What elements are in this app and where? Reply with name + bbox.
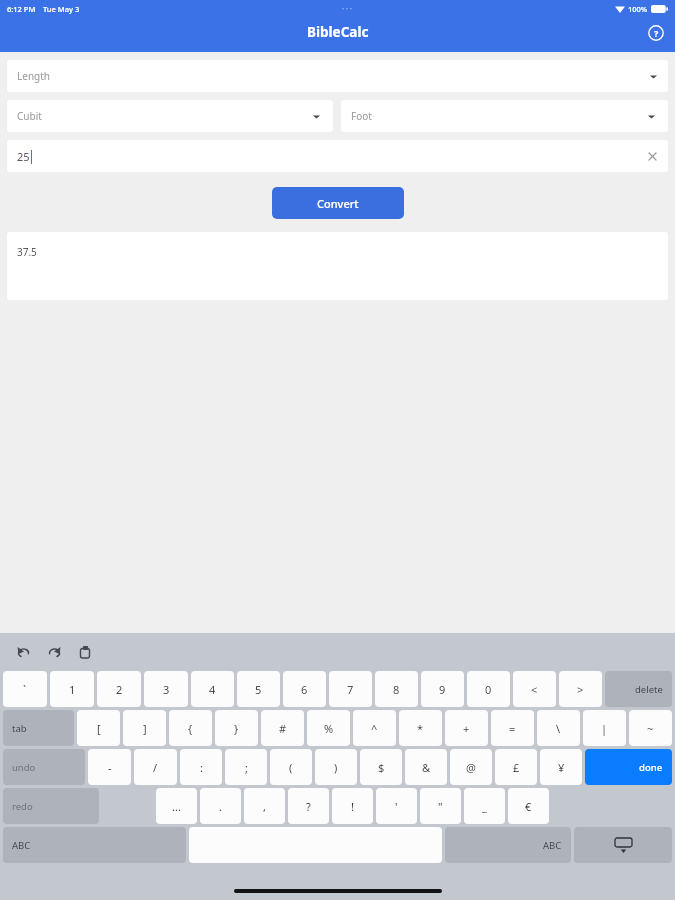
button[interactable]: _	[464, 788, 505, 824]
button[interactable]: delete	[605, 671, 672, 707]
button[interactable]: Undo	[13, 642, 33, 662]
staticText: <	[531, 682, 538, 697]
button[interactable]: Dismiss keyboard	[574, 827, 672, 863]
staticText: &	[422, 760, 431, 775]
staticText: 8	[393, 682, 400, 697]
button[interactable]: 37.5	[7, 232, 668, 300]
button[interactable]: }	[215, 710, 258, 746]
button[interactable]: *	[399, 710, 442, 746]
button[interactable]: ~	[629, 710, 672, 746]
staticText: (	[289, 760, 293, 775]
button[interactable]: <	[513, 671, 556, 707]
button[interactable]: 0	[467, 671, 510, 707]
button[interactable]: !	[332, 788, 373, 824]
button[interactable]: /	[134, 749, 177, 785]
button[interactable]: #	[261, 710, 304, 746]
button[interactable]: :	[180, 749, 222, 785]
button[interactable]: Cubit	[7, 100, 333, 132]
button[interactable]: 7	[329, 671, 372, 707]
button[interactable]: ...	[156, 788, 197, 824]
button[interactable]: 4	[191, 671, 234, 707]
button[interactable]: .	[200, 788, 241, 824]
button[interactable]: ABC	[445, 827, 571, 863]
staticText: 6:12 PM	[7, 4, 36, 14]
button[interactable]: +	[445, 710, 488, 746]
button[interactable]: \	[537, 710, 580, 746]
staticText: _	[482, 799, 487, 814]
staticText: ABC	[543, 839, 562, 852]
button[interactable]: €	[508, 788, 549, 824]
button[interactable]: =	[491, 710, 534, 746]
staticText: =	[509, 721, 516, 736]
staticText: 100%	[628, 4, 648, 14]
button[interactable]: -	[88, 749, 131, 785]
button[interactable]: '	[376, 788, 417, 824]
staticText: 0	[485, 682, 492, 697]
button[interactable]: Help	[644, 21, 668, 45]
button[interactable]: (	[270, 749, 312, 785]
staticText: 5	[255, 682, 262, 697]
button[interactable]: redo	[3, 788, 99, 824]
button[interactable]: ]	[123, 710, 166, 746]
button[interactable]: ?	[288, 788, 329, 824]
button[interactable]: >	[559, 671, 602, 707]
button[interactable]: 2	[97, 671, 141, 707]
staticText: @	[466, 760, 476, 775]
button[interactable]: Foot	[341, 100, 668, 132]
staticText: Foot	[351, 109, 372, 123]
button[interactable]: Clear text	[644, 148, 660, 164]
staticText: Convert	[317, 196, 359, 211]
staticText: ^	[371, 721, 378, 736]
staticText: "	[438, 799, 443, 814]
staticText: '	[395, 799, 398, 814]
button[interactable]: [	[77, 710, 120, 746]
staticText: 37.5	[17, 245, 37, 259]
button[interactable]: $	[360, 749, 402, 785]
button[interactable]: undo	[3, 749, 85, 785]
staticText: • • •	[342, 5, 352, 13]
staticText: Cubit	[17, 109, 42, 123]
staticText: )	[334, 760, 338, 775]
button[interactable]: {	[169, 710, 212, 746]
button[interactable]: 1	[50, 671, 94, 707]
button[interactable]: Length	[7, 60, 668, 92]
staticText: ABC	[12, 839, 31, 852]
staticText: 2	[116, 682, 123, 697]
button[interactable]: %	[307, 710, 350, 746]
staticText: ?	[306, 799, 311, 814]
button[interactable]: £	[495, 749, 537, 785]
staticText: 25	[17, 149, 30, 164]
staticText: undo	[12, 761, 36, 774]
button[interactable]: ;	[225, 749, 267, 785]
button[interactable]: 8	[375, 671, 418, 707]
button[interactable]: 5	[237, 671, 280, 707]
staticText: ]	[143, 721, 147, 736]
button[interactable]: )	[315, 749, 357, 785]
button[interactable]: 9	[421, 671, 464, 707]
button[interactable]: "	[420, 788, 461, 824]
button[interactable]: done	[585, 749, 672, 785]
staticText: [	[97, 721, 101, 736]
button[interactable]: |	[583, 710, 626, 746]
staticText: |	[601, 721, 608, 736]
button[interactable]: @	[450, 749, 492, 785]
staticText: %	[324, 721, 334, 736]
button[interactable]: 3	[144, 671, 188, 707]
button[interactable]: ^	[353, 710, 396, 746]
button[interactable]: ABC	[3, 827, 186, 863]
button[interactable]: 6	[283, 671, 326, 707]
button[interactable]: 25	[7, 140, 668, 172]
staticText: 3	[163, 682, 170, 697]
button[interactable]: ¥	[540, 749, 582, 785]
button[interactable]: Redo	[44, 642, 64, 662]
staticText: ;	[245, 760, 248, 775]
button[interactable]: &	[405, 749, 447, 785]
staticText: BibleCalc	[307, 23, 369, 41]
button[interactable]: Paste	[75, 642, 95, 662]
button[interactable]: `	[3, 671, 47, 707]
staticText: *	[417, 721, 424, 736]
button[interactable]: tab	[3, 710, 74, 746]
button[interactable]: Convert	[272, 187, 404, 219]
button[interactable]: ,	[244, 788, 285, 824]
